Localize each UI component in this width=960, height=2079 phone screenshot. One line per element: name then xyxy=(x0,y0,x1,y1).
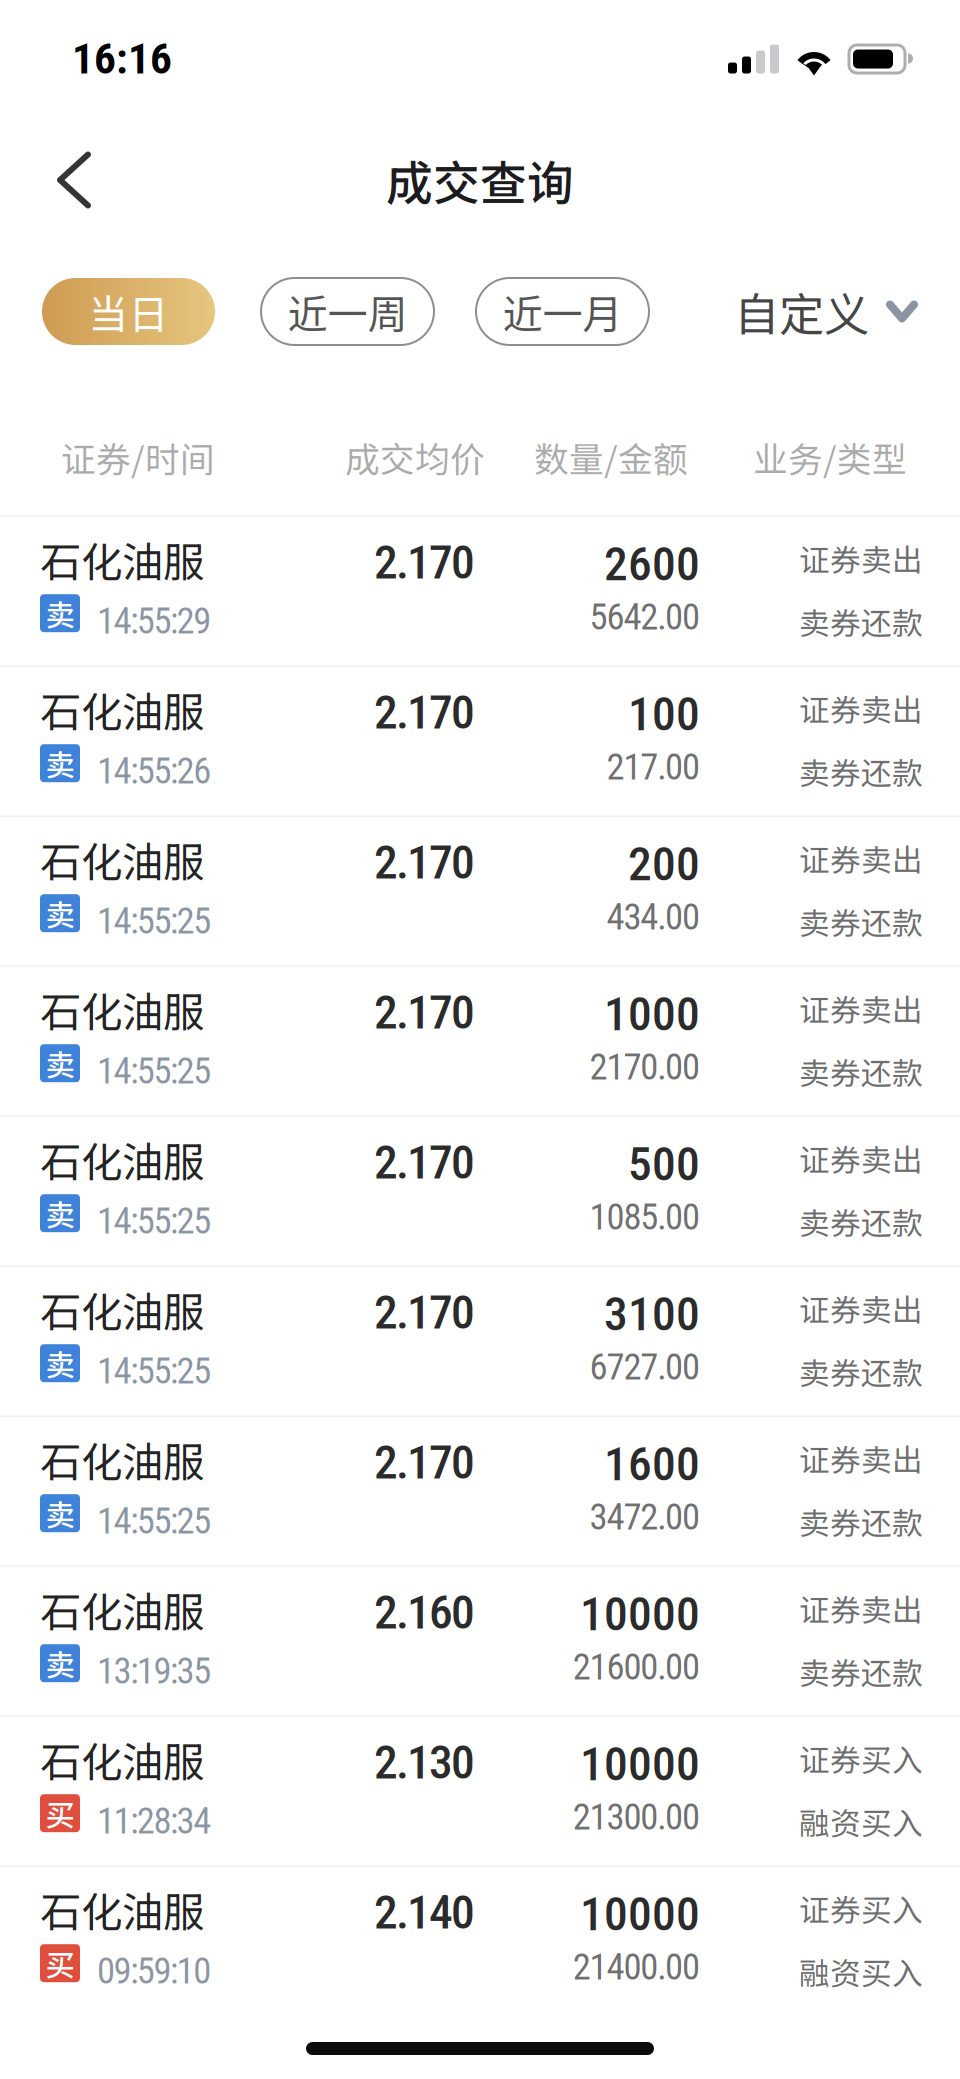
staticText: 买 xyxy=(45,1942,74,1984)
staticText: 14:55:26 xyxy=(97,750,211,792)
staticText: 卖 xyxy=(45,742,74,784)
button[interactable]: 石化油服 xyxy=(0,1567,960,1717)
staticText: 217.00 xyxy=(606,746,700,788)
staticText: 融资买入 xyxy=(799,1799,923,1844)
staticText: 融资买入 xyxy=(799,1949,923,1994)
staticText: 21300.00 xyxy=(573,1796,700,1838)
staticText: 14:55:25 xyxy=(97,1200,211,1242)
button[interactable]: 石化油服 xyxy=(0,667,960,817)
staticText: 13:19:35 xyxy=(97,1650,211,1692)
button[interactable]: 石化油服 xyxy=(0,1267,960,1417)
staticText: 石化油服 xyxy=(40,1129,204,1189)
staticText: 证券卖出 xyxy=(799,1436,923,1480)
staticText: 10000 xyxy=(580,1587,700,1642)
staticText: 近一月 xyxy=(502,282,622,340)
staticText: 成交均价 xyxy=(345,432,485,482)
staticText: 证券卖出 xyxy=(799,1286,923,1330)
staticText: 石化油服 xyxy=(40,979,204,1039)
staticText: 石化油服 xyxy=(40,1879,204,1939)
button[interactable]: Back xyxy=(31,131,117,228)
staticText: 卖券还款 xyxy=(799,899,923,944)
staticText: 2170.00 xyxy=(590,1046,700,1088)
staticText: 5642.00 xyxy=(590,596,700,638)
staticText: 卖 xyxy=(45,1192,74,1234)
staticText: 当日 xyxy=(88,282,168,340)
staticText: 2.170 xyxy=(374,535,475,590)
staticText: 2.170 xyxy=(374,1285,475,1340)
staticText: 1000 xyxy=(604,987,700,1042)
staticText: 2.170 xyxy=(374,835,475,890)
staticText: 卖 xyxy=(45,1042,74,1084)
button[interactable]: 近一月 xyxy=(476,278,649,345)
staticText: 14:55:25 xyxy=(97,1050,211,1092)
staticText: 证券卖出 xyxy=(799,536,923,580)
staticText: 16:16 xyxy=(72,34,172,84)
staticText: 11:28:34 xyxy=(97,1800,211,1842)
button[interactable]: 石化油服 xyxy=(0,817,960,967)
staticText: 2.140 xyxy=(374,1885,475,1940)
staticText: 10000 xyxy=(580,1887,700,1942)
staticText: 证券买入 xyxy=(799,1736,923,1780)
staticText: 买 xyxy=(45,1792,74,1834)
button[interactable]: 自定义 xyxy=(734,279,918,344)
staticText: 卖券还款 xyxy=(799,1049,923,1094)
staticText: 14:55:25 xyxy=(97,1500,211,1542)
staticText: 100 xyxy=(628,687,700,742)
staticText: 2.170 xyxy=(374,1435,475,1490)
button[interactable]: 石化油服 xyxy=(0,967,960,1117)
staticText: 2.160 xyxy=(374,1585,475,1640)
staticText: 石化油服 xyxy=(40,529,204,589)
staticText: 卖券还款 xyxy=(799,1499,923,1544)
staticText: 6727.00 xyxy=(590,1346,700,1388)
button[interactable]: 石化油服 xyxy=(0,1867,960,2017)
staticText: 200 xyxy=(628,837,700,892)
staticText: 2.170 xyxy=(374,685,475,740)
staticText: 卖 xyxy=(45,892,74,934)
staticText: 21400.00 xyxy=(573,1946,700,1988)
staticText: 2.170 xyxy=(374,985,475,1040)
staticText: 1600 xyxy=(604,1437,700,1492)
staticText: 石化油服 xyxy=(40,1429,204,1489)
button[interactable]: 石化油服 xyxy=(0,1417,960,1567)
staticText: 500 xyxy=(628,1137,700,1192)
staticText: 3100 xyxy=(604,1287,700,1342)
staticText: 石化油服 xyxy=(40,1579,204,1639)
staticText: 证券卖出 xyxy=(799,1586,923,1630)
staticText: 卖券还款 xyxy=(799,1349,923,1394)
staticText: 3472.00 xyxy=(590,1496,700,1538)
staticText: 卖 xyxy=(45,1642,74,1684)
staticText: 14:55:25 xyxy=(97,900,211,942)
staticText: 09:59:10 xyxy=(97,1950,211,1992)
staticText: 证券买入 xyxy=(799,1886,923,1930)
button[interactable]: 石化油服 xyxy=(0,517,960,667)
staticText: 1085.00 xyxy=(590,1196,700,1238)
staticText: 14:55:29 xyxy=(97,600,211,642)
staticText: 证券卖出 xyxy=(799,836,923,880)
staticText: 卖 xyxy=(45,592,74,634)
staticText: 证券卖出 xyxy=(799,686,923,730)
staticText: 卖券还款 xyxy=(799,749,923,794)
staticText: 近一周 xyxy=(287,282,407,340)
staticText: 石化油服 xyxy=(40,829,204,889)
staticText: 证券卖出 xyxy=(799,1136,923,1180)
button[interactable]: 当日 xyxy=(42,278,215,345)
staticText: 石化油服 xyxy=(40,1279,204,1339)
staticText: 卖 xyxy=(45,1492,74,1534)
staticText: 卖券还款 xyxy=(799,599,923,644)
staticText: 14:55:25 xyxy=(97,1350,211,1392)
button[interactable]: 石化油服 xyxy=(0,1717,960,1867)
staticText: 卖券还款 xyxy=(799,1649,923,1694)
button[interactable]: 近一周 xyxy=(261,278,434,345)
staticText: 数量/金额 xyxy=(534,432,688,482)
staticText: 卖 xyxy=(45,1342,74,1384)
staticText: 21600.00 xyxy=(573,1646,700,1688)
staticText: 石化油服 xyxy=(40,1729,204,1789)
staticText: 卖券还款 xyxy=(799,1199,923,1244)
button[interactable]: 石化油服 xyxy=(0,1117,960,1267)
staticText: 成交查询 xyxy=(386,146,574,214)
staticText: 10000 xyxy=(580,1737,700,1792)
staticText: 证券卖出 xyxy=(799,986,923,1030)
staticText: 2.130 xyxy=(374,1735,475,1790)
staticText: 2600 xyxy=(604,537,700,592)
staticText: 业务/类型 xyxy=(753,432,907,482)
